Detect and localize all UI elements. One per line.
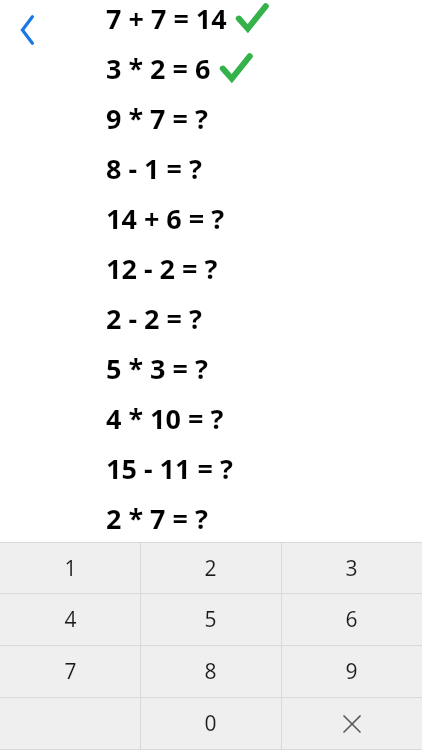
button[interactable]: 15 - 11 = ? bbox=[0, 443, 422, 493]
button[interactable]: 4 * 10 = ? bbox=[0, 393, 422, 443]
button[interactable]: 5 * 3 = ? bbox=[0, 343, 422, 393]
staticText: 2 - 2 = ? bbox=[106, 300, 202, 337]
button[interactable]: 7 bbox=[0, 646, 140, 697]
button[interactable]: 0 bbox=[140, 698, 281, 749]
button[interactable]: 2 * 7 = ? bbox=[0, 493, 422, 543]
button[interactable]: 2 - 2 = ? bbox=[0, 293, 422, 343]
button[interactable]: 2 bbox=[140, 543, 281, 593]
staticText: 5 bbox=[204, 605, 217, 634]
staticText: 7 bbox=[64, 657, 77, 686]
staticText: 4 bbox=[64, 605, 77, 634]
button[interactable]: 3 bbox=[281, 543, 422, 593]
staticText: 14 + 6 = ? bbox=[106, 200, 225, 237]
button[interactable]: 1 bbox=[0, 543, 140, 593]
button[interactable]: 14 + 6 = ? bbox=[0, 193, 422, 243]
staticText: 0 bbox=[204, 709, 217, 738]
button[interactable]: 12 - 2 = ? bbox=[0, 243, 422, 293]
button[interactable]: 4 bbox=[0, 594, 140, 645]
button[interactable]: 8 bbox=[140, 646, 281, 697]
staticText: 9 bbox=[345, 657, 358, 686]
button[interactable]: 8 - 1 = ? bbox=[0, 143, 422, 193]
staticText: 2 * 7 = ? bbox=[106, 500, 208, 537]
staticText: 4 * 10 = ? bbox=[106, 400, 224, 437]
button[interactable]: Back bbox=[8, 10, 48, 50]
staticText: 8 bbox=[204, 657, 217, 686]
staticText: 3 bbox=[345, 554, 358, 583]
staticText: 6 bbox=[345, 605, 358, 634]
button[interactable]: 6 bbox=[281, 594, 422, 645]
button[interactable]: Delete bbox=[281, 698, 422, 749]
staticText: 5 * 3 = ? bbox=[106, 350, 208, 387]
button[interactable]: 7 + 7 = 14 bbox=[0, 0, 422, 43]
staticText: 15 - 11 = ? bbox=[106, 450, 233, 487]
staticText: 1 bbox=[64, 554, 77, 583]
staticText: 7 + 7 = 14 bbox=[106, 0, 227, 37]
staticText: 9 * 7 = ? bbox=[106, 100, 208, 137]
button[interactable]: 9 * 7 = ? bbox=[0, 93, 422, 143]
button[interactable]: 3 * 2 = 6 bbox=[0, 43, 422, 93]
button[interactable]: 5 bbox=[140, 594, 281, 645]
staticText: 12 - 2 = ? bbox=[106, 250, 218, 287]
staticText: 3 * 2 = 6 bbox=[106, 50, 211, 87]
button[interactable]: 9 bbox=[281, 646, 422, 697]
staticText: 2 bbox=[204, 554, 217, 583]
staticText: 8 - 1 = ? bbox=[106, 150, 202, 187]
